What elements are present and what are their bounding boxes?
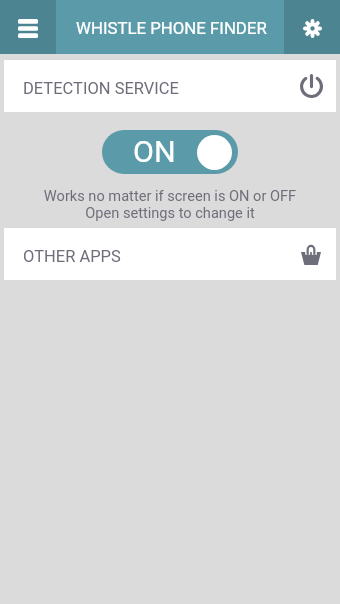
staticText: Works no matter if screen is ON or OFF O… <box>0 187 340 222</box>
staticText: DETECTION SERVICE <box>23 79 179 98</box>
staticText: WHISTLE PHONE FINDER <box>76 18 267 38</box>
staticText: OTHER APPS <box>23 247 121 266</box>
button[interactable]: Browse our other apps on the store <box>301 245 321 265</box>
button[interactable]: OTHER APPS <box>4 228 336 280</box>
button[interactable]: Open navigation menu <box>0 0 56 54</box>
button[interactable]: Detection service switch, on <box>102 130 238 174</box>
button[interactable]: Settings <box>284 0 340 54</box>
button[interactable]: Toggle detection service power <box>300 74 323 98</box>
button[interactable]: DETECTION SERVICE <box>4 60 336 112</box>
staticText: ON <box>133 134 176 170</box>
